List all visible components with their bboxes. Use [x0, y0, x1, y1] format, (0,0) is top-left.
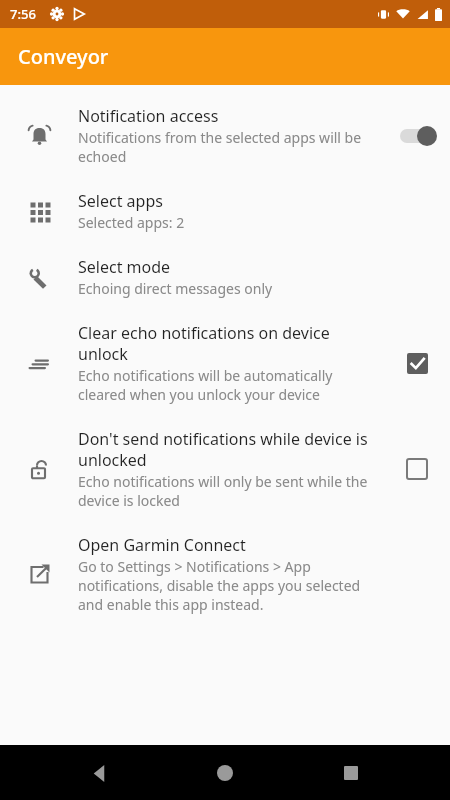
button[interactable]: Clear echo notifications on device unloc… — [0, 310, 450, 416]
staticText: Notification access — [78, 105, 219, 127]
staticText: Notifications from the selected apps wil… — [78, 128, 376, 166]
button[interactable]: Recents — [324, 746, 378, 800]
staticText: Don't send notifications while device is… — [78, 428, 376, 471]
button[interactable]: Don't send notifications while device is… — [0, 416, 450, 522]
staticText: Select mode — [78, 256, 171, 278]
button[interactable]: Notification access — [0, 93, 450, 178]
button[interactable]: Select mode — [0, 244, 450, 310]
staticText: Echo notifications will only be sent whi… — [78, 472, 376, 510]
staticText: 7:56 — [10, 5, 36, 23]
button[interactable]: Don't send notifications checkbox — [397, 449, 437, 489]
staticText: Open Garmin Connect — [78, 534, 246, 556]
staticText: Echoing direct messages only — [78, 279, 273, 298]
button[interactable]: Clear echo notifications checkbox — [397, 343, 437, 383]
button[interactable]: Select apps — [0, 178, 450, 244]
staticText: Echo notifications will be automatically… — [78, 366, 376, 404]
button[interactable]: Notification access toggle — [391, 120, 443, 152]
staticText: Go to Settings > Notifications > App not… — [78, 557, 376, 614]
staticText: Conveyor — [18, 43, 109, 70]
button[interactable]: Open Garmin Connect — [0, 522, 450, 626]
button[interactable]: Home — [198, 746, 252, 800]
button[interactable]: Back — [72, 746, 126, 800]
staticText: Select apps — [78, 190, 163, 212]
staticText: Clear echo notifications on device unloc… — [78, 322, 376, 365]
staticText: Selected apps: 2 — [78, 213, 185, 232]
